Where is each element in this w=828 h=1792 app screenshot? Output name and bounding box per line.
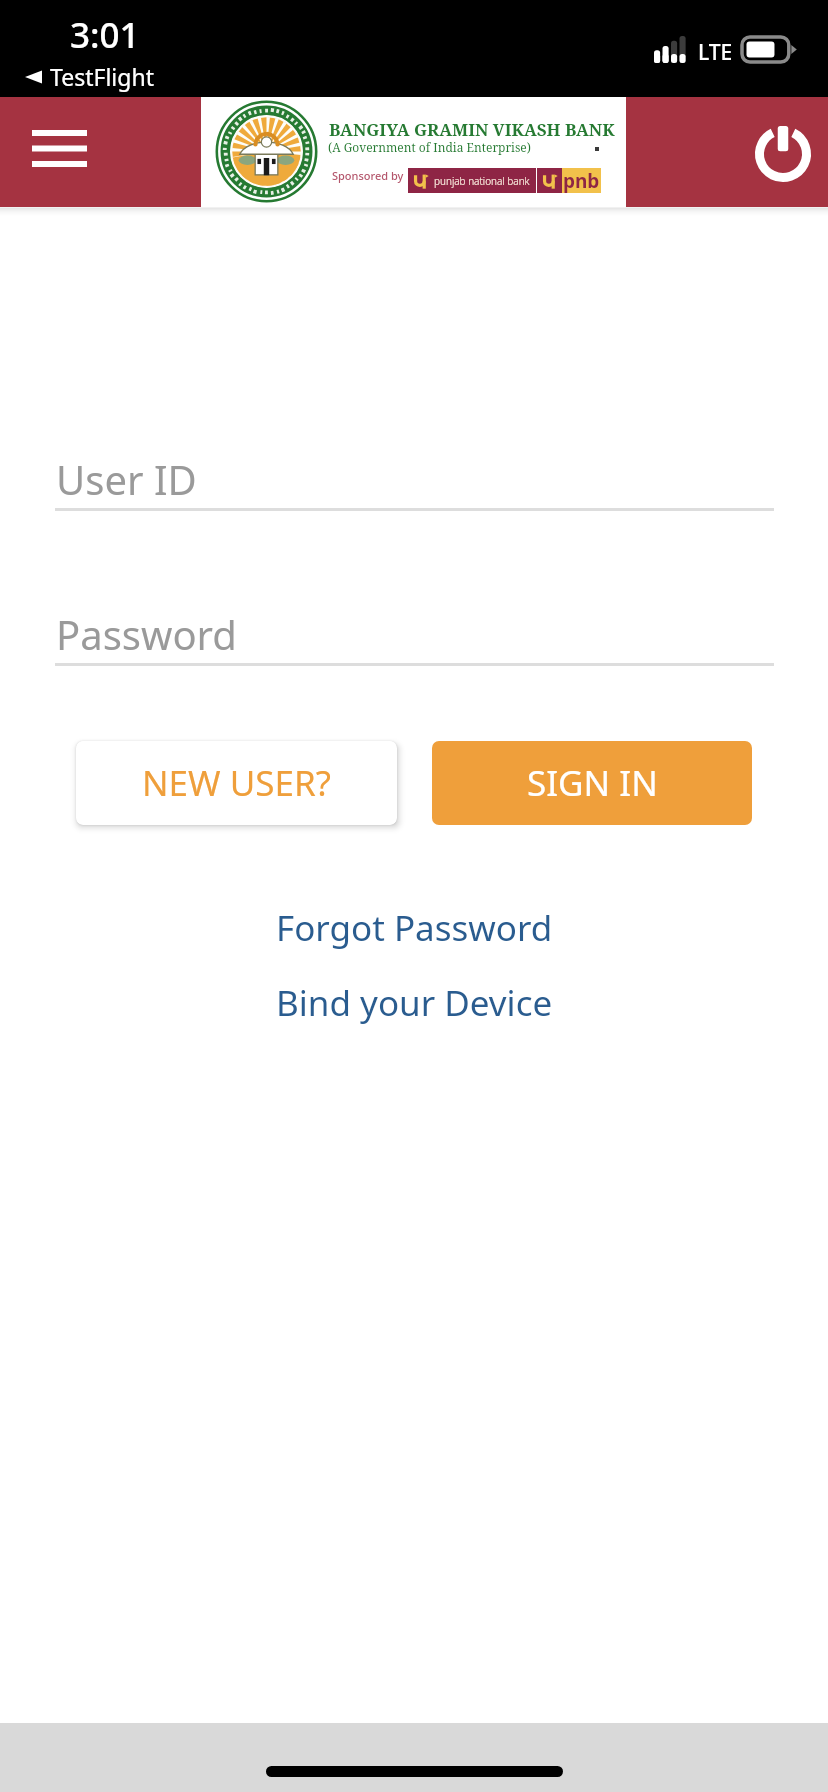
staticText: TestFlight [50, 61, 154, 92]
staticText: User ID [56, 452, 197, 506]
button[interactable]: SIGN IN [432, 741, 752, 825]
button[interactable]: Password [55, 595, 774, 666]
button[interactable]: User ID [55, 440, 774, 511]
button[interactable]: NEW USER? [76, 741, 397, 825]
button[interactable]: Bind your Device [276, 974, 553, 1032]
staticText: pnb [563, 168, 600, 193]
staticText: LTE [698, 38, 733, 67]
staticText: 3:01 [70, 11, 140, 59]
staticText: punjab national bank [434, 174, 530, 188]
staticText: Sponsored by [332, 168, 404, 183]
staticText: Forgot Password [276, 904, 553, 952]
staticText: NEW USER? [142, 759, 331, 807]
staticText: Bind your Device [276, 979, 553, 1027]
button[interactable]: Menu [0, 97, 120, 207]
staticText: SIGN IN [527, 759, 658, 807]
staticText: (A Government of India Enterprise) [328, 139, 531, 155]
staticText: Password [56, 607, 237, 661]
staticText: BANGIYA GRAMIN VIKASH BANK [329, 118, 615, 141]
button[interactable]: Forgot Password [276, 899, 553, 957]
button[interactable]: Logout [718, 97, 828, 207]
